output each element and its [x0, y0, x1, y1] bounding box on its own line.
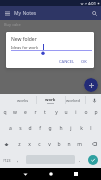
staticText: My Notes — [14, 10, 37, 17]
staticText: r — [34, 109, 37, 116]
button[interactable]: s — [15, 122, 25, 135]
staticText: w — [13, 109, 17, 116]
staticText: CANCEL — [59, 59, 75, 64]
button[interactable]: b — [54, 138, 64, 151]
staticText: worked — [66, 98, 81, 103]
button[interactable]: o — [81, 106, 91, 119]
staticText: works — [17, 98, 29, 103]
button[interactable]: y — [51, 106, 61, 119]
button[interactable]: ?123 — [0, 152, 14, 168]
staticText: y — [55, 109, 58, 116]
button[interactable]: Recents — [71, 169, 81, 179]
button[interactable]: i — [71, 106, 81, 119]
button[interactable]: . — [75, 152, 85, 168]
button[interactable]: , — [13, 152, 23, 168]
button[interactable]: a — [5, 122, 15, 135]
button[interactable]: h — [56, 122, 66, 135]
staticText: f — [39, 125, 41, 132]
staticText: 4:01 — [88, 1, 96, 6]
button[interactable]: g — [45, 122, 55, 135]
staticText: e — [24, 109, 27, 116]
button[interactable]: Voice input — [88, 94, 100, 106]
button[interactable]: l — [86, 122, 96, 135]
staticText: Ideas for work — [11, 45, 39, 50]
button[interactable]: u — [61, 106, 71, 119]
button[interactable]: e — [20, 106, 30, 119]
staticText: l — [90, 125, 92, 132]
button[interactable]: n — [64, 138, 74, 151]
staticText: t — [44, 109, 46, 116]
button[interactable]: Shift — [0, 136, 13, 152]
staticText: u — [64, 109, 68, 116]
button[interactable]: c — [34, 138, 44, 151]
staticText: OK — [81, 59, 87, 64]
staticText: x — [28, 141, 31, 148]
button[interactable]: f — [35, 122, 45, 135]
button[interactable]: w — [10, 106, 20, 119]
button[interactable]: Backspace — [86, 136, 101, 152]
staticText: d — [28, 125, 32, 132]
staticText: n — [67, 141, 71, 148]
button[interactable]: Enter — [85, 152, 101, 168]
button[interactable]: Search — [89, 8, 99, 18]
button[interactable]: worked — [62, 94, 85, 106]
button[interactable]: r — [30, 106, 40, 119]
staticText: o — [84, 109, 88, 116]
button[interactable]: p — [91, 106, 101, 119]
button[interactable]: m — [74, 138, 84, 151]
button[interactable]: v — [44, 138, 54, 151]
staticText: q — [3, 109, 7, 116]
button[interactable]: work — [36, 94, 65, 106]
staticText: c — [38, 141, 41, 148]
button[interactable]: z — [14, 138, 24, 151]
button[interactable]: Back — [20, 169, 30, 179]
button[interactable]: Home — [46, 169, 56, 179]
staticText: g — [48, 125, 52, 132]
button[interactable]: Menu — [2, 8, 12, 18]
staticText: , — [17, 157, 19, 164]
button[interactable]: k — [76, 122, 86, 135]
staticText: p — [94, 109, 98, 116]
button[interactable]: d — [25, 122, 35, 135]
staticText: New folder — [11, 36, 37, 43]
staticText: a — [9, 125, 12, 132]
staticText: s — [19, 125, 22, 132]
staticText: i — [75, 109, 77, 116]
staticText: ?123 — [3, 158, 11, 163]
button[interactable]: OK — [79, 57, 89, 66]
staticText: k — [80, 125, 83, 132]
button[interactable]: q — [0, 106, 10, 119]
staticText: j — [70, 125, 72, 132]
staticText: Buy cake — [4, 22, 21, 27]
staticText: h — [59, 125, 63, 132]
staticText: m — [77, 141, 82, 148]
button[interactable]: t — [40, 106, 50, 119]
staticText: b — [57, 141, 61, 148]
button[interactable]: j — [66, 122, 76, 135]
staticText: z — [18, 141, 21, 148]
staticText: . — [79, 157, 81, 164]
button[interactable]: CANCEL — [57, 57, 77, 66]
button[interactable]: works — [8, 94, 37, 106]
button[interactable]: x — [24, 138, 34, 151]
staticText: v — [48, 141, 51, 148]
button[interactable]: New note — [84, 78, 98, 92]
staticText: work — [45, 97, 56, 102]
